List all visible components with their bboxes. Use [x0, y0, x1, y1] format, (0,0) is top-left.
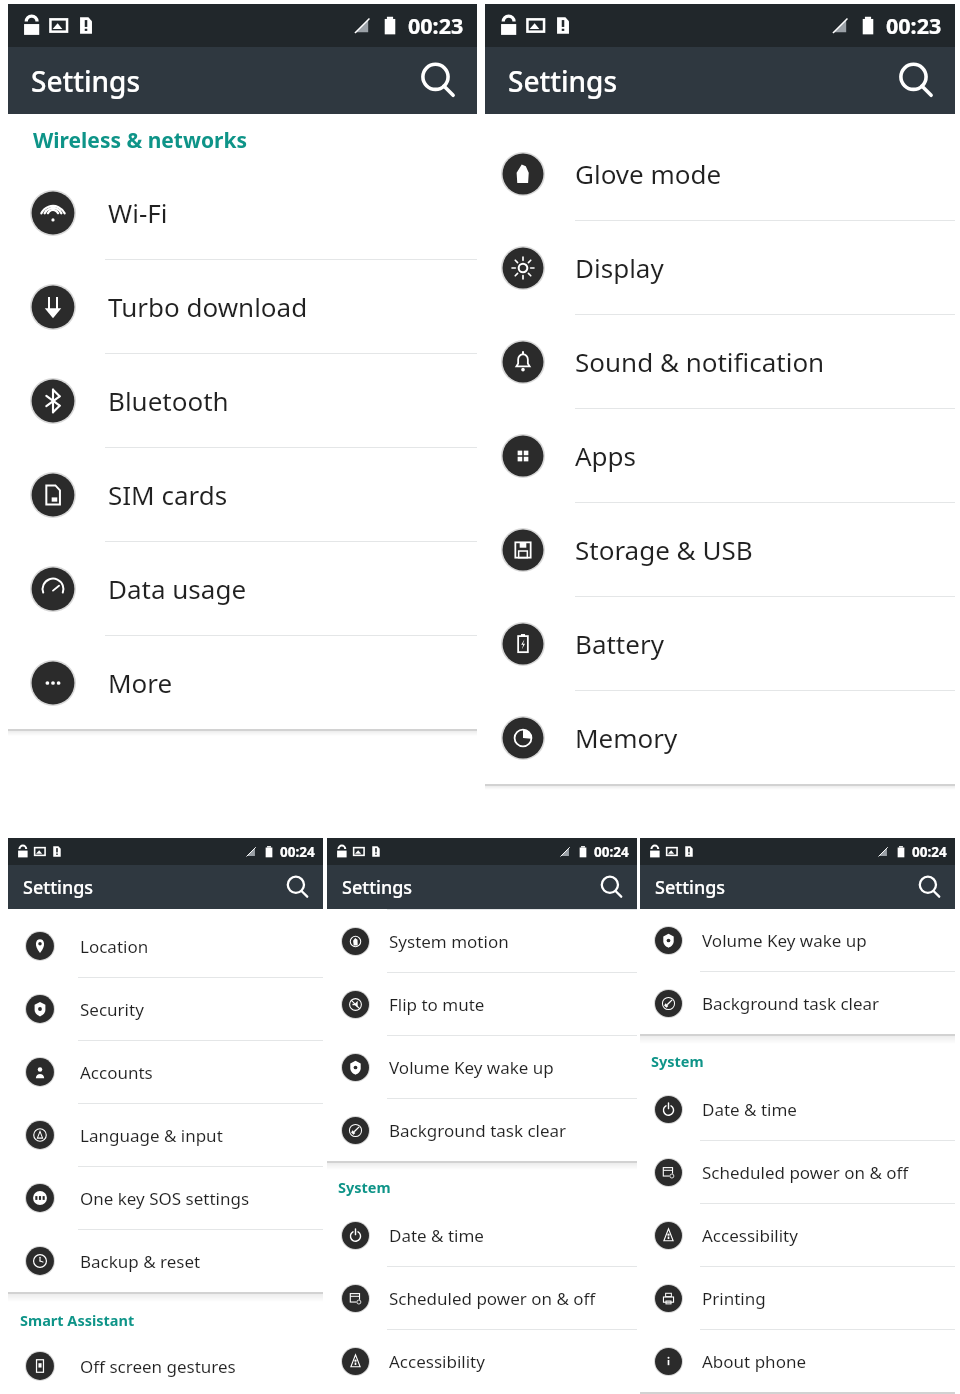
staticText: Turbo download [108, 289, 308, 324]
staticText: 00:23 [886, 11, 942, 40]
button[interactable]: Language & input [8, 1104, 323, 1166]
button[interactable]: Location [8, 915, 323, 977]
staticText: Wi-Fi [108, 195, 168, 230]
staticText: More [108, 665, 173, 700]
button[interactable]: Memory [485, 691, 955, 784]
staticText: 00:23 [408, 11, 464, 40]
staticText: Background task clear [389, 1119, 567, 1142]
staticText: 00:24 [280, 843, 315, 861]
button[interactable]: More [8, 636, 477, 729]
button[interactable]: Volume Key wake up [327, 1036, 637, 1098]
button[interactable]: Data usage [8, 542, 477, 635]
staticText: Off screen gestures [80, 1355, 236, 1378]
button[interactable]: Search [284, 874, 311, 901]
staticText: SIM cards [108, 477, 228, 512]
button[interactable]: Search [895, 60, 937, 102]
staticText: Settings [31, 62, 141, 100]
staticText: System [651, 1051, 704, 1071]
staticText: Volume Key wake up [702, 929, 867, 952]
staticText: One key SOS settings [80, 1187, 250, 1210]
staticText: Accessibility [702, 1224, 798, 1247]
staticText: Printing [702, 1287, 766, 1310]
staticText: 00:24 [912, 843, 947, 861]
button[interactable]: Scheduled power on & off [640, 1141, 955, 1203]
button[interactable]: Accounts [8, 1041, 323, 1103]
staticText: System [338, 1177, 391, 1197]
button[interactable]: About phone [640, 1330, 955, 1392]
button[interactable]: Display [485, 221, 955, 314]
staticText: Date & time [702, 1098, 797, 1121]
staticText: Date & time [389, 1224, 484, 1247]
button[interactable]: Sound & notification [485, 315, 955, 408]
button[interactable]: Glove mode [485, 127, 955, 220]
staticText: Glove mode [575, 156, 722, 191]
staticText: Memory [575, 720, 678, 755]
button[interactable]: Wi-Fi [8, 166, 477, 259]
staticText: Battery [575, 626, 664, 661]
staticText: Settings [508, 62, 618, 100]
staticText: Accessibility [389, 1350, 485, 1373]
staticText: Backup & reset [80, 1250, 201, 1273]
staticText: Flip to mute [389, 993, 485, 1016]
staticText: Background task clear [702, 992, 880, 1015]
staticText: Display [575, 250, 664, 285]
button[interactable]: Background task clear [327, 1099, 637, 1161]
button[interactable]: Apps [485, 409, 955, 502]
staticText: Settings [342, 875, 413, 900]
button[interactable]: Date & time [327, 1204, 637, 1266]
button[interactable]: Security [8, 978, 323, 1040]
staticText: Apps [575, 438, 637, 473]
button[interactable]: Backup & reset [8, 1230, 323, 1292]
button[interactable]: SIM cards [8, 448, 477, 541]
button[interactable]: Date & time [640, 1078, 955, 1140]
staticText: Smart Assistant [20, 1310, 135, 1330]
button[interactable]: Accessibility [640, 1204, 955, 1266]
staticText: Language & input [80, 1124, 223, 1147]
staticText: Volume Key wake up [389, 1056, 554, 1079]
button[interactable]: Bluetooth [8, 354, 477, 447]
button[interactable]: Scheduled power on & off [327, 1267, 637, 1329]
staticText: Security [80, 998, 144, 1021]
button[interactable]: One key SOS settings [8, 1167, 323, 1229]
staticText: System motion [389, 930, 509, 953]
button[interactable]: Turbo download [8, 260, 477, 353]
button[interactable]: Volume Key wake up [640, 909, 955, 971]
staticText: About phone [702, 1350, 807, 1373]
staticText: Scheduled power on & off [389, 1287, 596, 1310]
staticText: Wireless & networks [33, 126, 247, 155]
staticText: Data usage [108, 571, 247, 606]
button[interactable]: Background task clear [640, 972, 955, 1034]
button[interactable]: Off screen gestures [8, 1338, 323, 1394]
staticText: Bluetooth [108, 383, 229, 418]
button[interactable]: Printing [640, 1267, 955, 1329]
button[interactable]: Search [598, 874, 625, 901]
staticText: Scheduled power on & off [702, 1161, 909, 1184]
staticText: Accounts [80, 1061, 153, 1084]
button[interactable]: System motion [327, 910, 637, 972]
button[interactable]: Storage & USB [485, 503, 955, 596]
staticText: Sound & notification [575, 344, 825, 379]
staticText: 00:24 [594, 843, 629, 861]
staticText: Storage & USB [575, 532, 753, 567]
button[interactable]: Battery [485, 597, 955, 690]
button[interactable]: Accessibility [327, 1330, 637, 1392]
button[interactable]: Search [916, 874, 943, 901]
button[interactable]: Search [417, 60, 459, 102]
staticText: Location [80, 935, 149, 958]
staticText: Settings [655, 875, 726, 900]
staticText: Settings [23, 875, 94, 900]
button[interactable]: Flip to mute [327, 973, 637, 1035]
